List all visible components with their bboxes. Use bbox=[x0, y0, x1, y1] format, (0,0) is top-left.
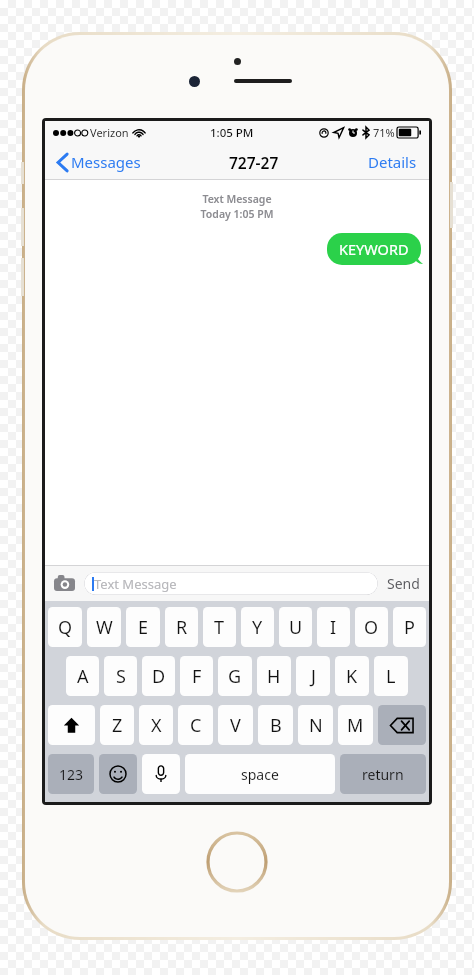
staticText: Send bbox=[387, 574, 420, 593]
staticText: B bbox=[270, 713, 282, 738]
staticText: O bbox=[364, 615, 379, 640]
staticText: Verizon bbox=[90, 125, 129, 140]
button[interactable]: 123 bbox=[48, 754, 94, 794]
staticText: X bbox=[151, 713, 162, 738]
staticText: U bbox=[289, 615, 303, 640]
button[interactable]: W bbox=[87, 607, 121, 647]
staticText: J bbox=[311, 664, 316, 689]
button[interactable]: B bbox=[258, 705, 293, 745]
staticText: Today 1:05 PM bbox=[45, 207, 429, 221]
button[interactable]: L bbox=[374, 656, 408, 696]
staticText: L bbox=[386, 664, 396, 689]
button[interactable]: S bbox=[104, 656, 137, 696]
button[interactable]: Dictation bbox=[142, 754, 180, 794]
button[interactable]: Emoji bbox=[99, 754, 137, 794]
staticText: KEYWORD bbox=[339, 239, 409, 259]
staticText: return bbox=[362, 765, 404, 784]
button[interactable]: R bbox=[165, 607, 198, 647]
staticText: H bbox=[267, 664, 281, 689]
staticText: Messages bbox=[71, 152, 141, 172]
staticText: S bbox=[116, 664, 126, 689]
staticText: W bbox=[96, 615, 113, 640]
button[interactable]: Send bbox=[385, 571, 422, 596]
staticText: space bbox=[241, 765, 279, 784]
staticText: F bbox=[192, 664, 202, 689]
button[interactable]: M bbox=[338, 705, 373, 745]
staticText: N bbox=[309, 713, 323, 738]
button[interactable]: O bbox=[355, 607, 388, 647]
staticText: Details bbox=[368, 152, 417, 172]
button[interactable]: Z bbox=[100, 705, 134, 745]
staticText: I bbox=[330, 615, 337, 640]
staticText: A bbox=[77, 664, 89, 689]
button[interactable]: Q bbox=[48, 607, 82, 647]
button[interactable]: Details bbox=[364, 148, 421, 176]
staticText: 727-27 bbox=[229, 152, 279, 173]
button[interactable]: G bbox=[218, 656, 252, 696]
staticText: E bbox=[138, 615, 149, 640]
staticText: K bbox=[346, 664, 358, 689]
button[interactable]: X bbox=[139, 705, 173, 745]
staticText: 1:05 PM bbox=[210, 125, 254, 141]
staticText: G bbox=[228, 664, 242, 689]
button[interactable]: Camera bbox=[52, 573, 77, 593]
staticText: V bbox=[230, 713, 241, 738]
staticText: R bbox=[176, 615, 188, 640]
button[interactable]: Y bbox=[241, 607, 274, 647]
staticText: P bbox=[404, 615, 415, 640]
button[interactable]: J bbox=[296, 656, 330, 696]
button[interactable]: H bbox=[257, 656, 291, 696]
staticText: 71% bbox=[373, 125, 395, 140]
button[interactable]: Text Message bbox=[84, 572, 378, 595]
button[interactable]: Shift bbox=[48, 705, 95, 745]
button[interactable]: return bbox=[340, 754, 426, 794]
button[interactable]: Messages bbox=[53, 148, 145, 176]
button[interactable]: D bbox=[142, 656, 175, 696]
button[interactable]: N bbox=[298, 705, 333, 745]
button[interactable]: K bbox=[335, 656, 369, 696]
staticText: C bbox=[190, 713, 202, 738]
button[interactable]: Backspace bbox=[378, 705, 426, 745]
staticText: M bbox=[347, 713, 364, 738]
button[interactable]: P bbox=[393, 607, 426, 647]
staticText: Q bbox=[58, 615, 73, 640]
button[interactable]: T bbox=[203, 607, 236, 647]
staticText: D bbox=[152, 664, 166, 689]
staticText: Z bbox=[112, 713, 123, 738]
button[interactable]: A bbox=[66, 656, 99, 696]
button[interactable]: F bbox=[180, 656, 213, 696]
button[interactable]: space bbox=[185, 754, 335, 794]
button[interactable]: KEYWORD bbox=[327, 233, 421, 265]
button[interactable]: U bbox=[279, 607, 312, 647]
button[interactable]: V bbox=[218, 705, 253, 745]
button[interactable]: I bbox=[317, 607, 350, 647]
staticText: T bbox=[214, 615, 225, 640]
staticText: 123 bbox=[59, 765, 84, 784]
button[interactable]: E bbox=[126, 607, 160, 647]
staticText: Text Message bbox=[45, 192, 429, 206]
staticText: Text Message bbox=[94, 575, 177, 593]
button[interactable]: C bbox=[178, 705, 213, 745]
staticText: Y bbox=[252, 615, 263, 640]
